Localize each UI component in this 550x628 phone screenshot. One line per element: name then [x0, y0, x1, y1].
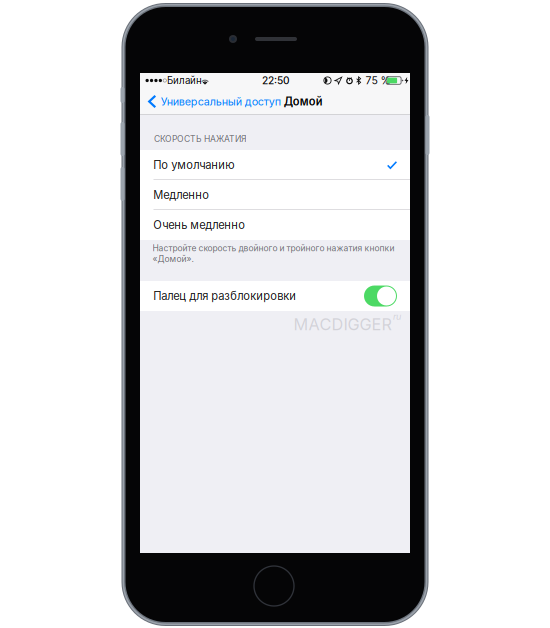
staticText: 75 % [365, 74, 390, 87]
button[interactable]: Очень медленно [140, 210, 410, 240]
staticText: Настройте скорость двойного и тройного н… [153, 243, 395, 253]
button[interactable]: По умолчанию [140, 150, 410, 180]
staticText: По умолчанию [153, 158, 234, 172]
button[interactable]: Палец для разблокировки [140, 281, 410, 311]
staticText: Очень медленно [153, 218, 245, 232]
staticText: Палец для разблокировки [153, 289, 296, 303]
button[interactable]: Универсальный доступ [140, 90, 281, 113]
button[interactable]: Медленно [140, 180, 410, 210]
staticText: Медленно [153, 188, 209, 202]
staticText: MACDIGGER [293, 314, 391, 334]
staticText: Домой [284, 95, 323, 108]
staticText: Билайн [167, 75, 202, 86]
staticText: ru [393, 311, 401, 322]
staticText: Универсальный доступ [161, 95, 281, 108]
staticText: «Домой». [153, 254, 194, 264]
staticText: СКОРОСТЬ НАЖАТИЯ [154, 134, 246, 144]
staticText: 22:50 [262, 74, 290, 87]
